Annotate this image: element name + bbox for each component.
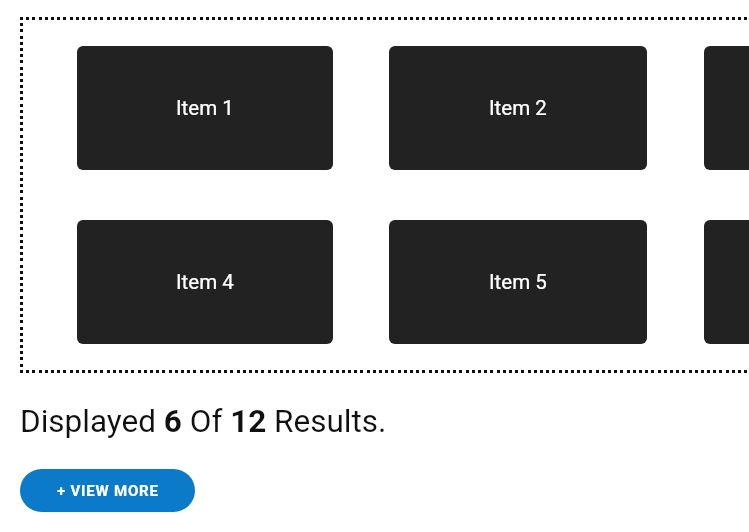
staticText: Item 1 (176, 96, 234, 120)
staticText: + VIEW MORE (57, 482, 159, 500)
button[interactable]: Item 4 (77, 220, 333, 344)
staticText: Item 2 (489, 96, 547, 120)
button[interactable]: Item 1 (77, 46, 333, 170)
staticText: Item 4 (176, 270, 234, 294)
other: Item carousel (0, 0, 749, 532)
staticText: Item 5 (489, 270, 547, 294)
button[interactable]: Item 5 (389, 220, 647, 344)
button[interactable]: Item 3 (704, 46, 749, 170)
staticText: Displayed 6 Of 12 Results. (20, 403, 387, 440)
button[interactable]: Item 2 (389, 46, 647, 170)
button[interactable]: + VIEW MORE (20, 469, 195, 512)
button[interactable]: Item 6 (704, 220, 749, 344)
